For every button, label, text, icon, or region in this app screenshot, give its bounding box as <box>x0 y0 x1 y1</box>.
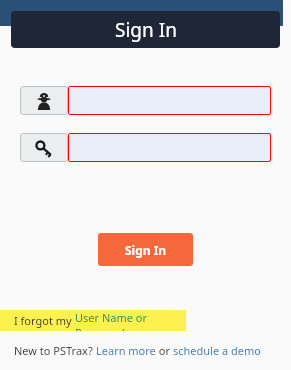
button[interactable] <box>68 133 271 162</box>
staticText: Sign In <box>115 17 177 43</box>
button[interactable] <box>68 86 271 115</box>
staticText: Learn more <box>96 343 156 358</box>
staticText: New to PSTrax? <box>14 343 96 358</box>
staticText: I forgot my <box>14 313 75 328</box>
staticText: Sign In <box>125 242 167 258</box>
button[interactable]: Sign In <box>98 233 193 266</box>
button[interactable]: I forgot my <box>0 310 186 331</box>
other: Password <box>20 133 68 162</box>
other: User name <box>20 86 68 115</box>
staticText: User Name or Password <box>75 310 186 331</box>
staticText: or <box>156 343 173 358</box>
button[interactable]: schedule a demo <box>173 343 261 358</box>
button[interactable]: Learn more <box>96 343 156 358</box>
staticText: schedule a demo <box>173 343 261 358</box>
